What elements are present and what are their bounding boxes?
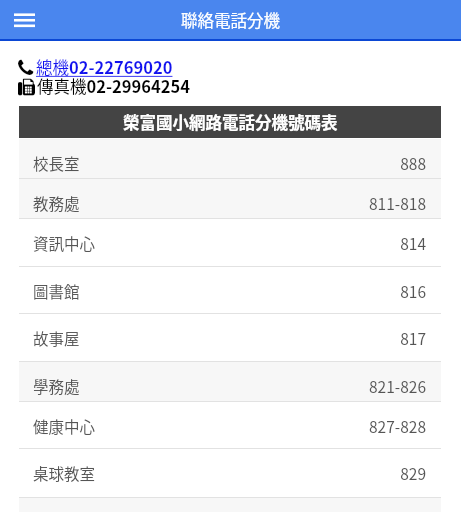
button[interactable]: 桌球教室 [19,449,441,498]
button[interactable]: 圖書館 [19,267,441,314]
button[interactable]: 教務處 [19,179,441,219]
staticText: 814 [400,232,426,254]
staticText: 總機02-22769020 [36,55,173,79]
staticText: 教務處 [33,192,80,214]
button[interactable]:  [18,55,173,79]
staticText: 圖書館 [33,280,80,302]
staticText: 聯絡電話分機 [181,8,280,32]
button[interactable]: 健康中心 [19,402,441,449]
staticText: 817 [400,327,426,349]
staticText: 827-828 [369,415,426,437]
staticText:  [18,78,37,95]
staticText: 故事屋 [33,327,80,349]
staticText: 傳真機02-29964254 [37,74,190,98]
button[interactable]: 校長室 [19,139,441,179]
staticText:  [18,58,36,78]
staticText: 資訊中心 [33,232,96,254]
button[interactable]: 故事屋 [19,314,441,362]
button[interactable]: 學務處 [19,362,441,402]
staticText: 桌球教室 [33,462,96,484]
button[interactable]: 資訊中心 [19,219,441,267]
button[interactable]: Open navigation menu [5,0,44,39]
staticText: 校長室 [33,152,80,174]
staticText: 健康中心 [33,415,96,437]
staticText: 816 [400,280,426,302]
staticText: 811-818 [369,192,426,214]
staticText: 829 [400,462,426,484]
staticText: 學務處 [33,375,80,397]
staticText: 榮富國小網路電話分機號碼表 [123,110,338,134]
staticText: 821-826 [369,375,426,397]
staticText: 888 [400,152,426,174]
